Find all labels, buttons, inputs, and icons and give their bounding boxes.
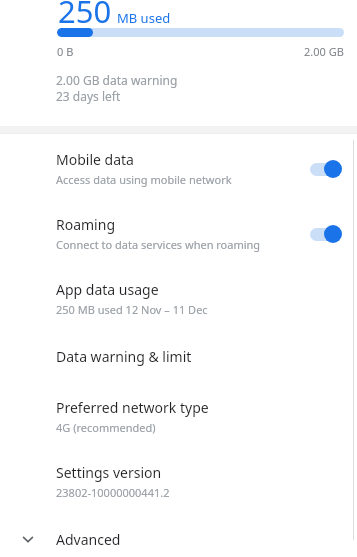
staticText: Advanced [56, 530, 121, 547]
staticText: 23 days left [56, 88, 121, 104]
staticText: Access data using mobile network [56, 172, 232, 187]
staticText: Settings version [56, 463, 162, 482]
staticText: 2.00 GB [304, 44, 344, 59]
button[interactable]: Advanced [0, 514, 357, 557]
staticText: 23802-10000000441.2 [56, 485, 170, 500]
button[interactable]: Data warning & limit [0, 331, 357, 384]
staticText: Mobile data [56, 150, 134, 169]
staticText: 250 [58, 0, 112, 32]
button[interactable]: Mobile data [0, 134, 357, 201]
staticText: 250 MB used 12 Nov – 11 Dec [56, 302, 208, 317]
staticText: 2.00 GB data warning [56, 72, 178, 88]
staticText: Connect to data services when roaming [56, 237, 261, 252]
staticText: 0 B [57, 44, 74, 59]
other: Toggle [307, 158, 347, 180]
staticText: App data usage [56, 280, 159, 299]
staticText: MB used [117, 9, 171, 27]
staticText: Roaming [56, 215, 115, 234]
staticText: Preferred network type [56, 398, 209, 417]
button[interactable]: Preferred network type [0, 384, 357, 449]
other: Toggle [307, 223, 347, 245]
button[interactable]: App data usage [0, 266, 357, 331]
staticText: Data warning & limit [56, 347, 192, 366]
button[interactable]: Roaming [0, 201, 357, 266]
staticText: 4G (recommended) [56, 420, 156, 435]
button[interactable]: Settings version [0, 449, 357, 514]
